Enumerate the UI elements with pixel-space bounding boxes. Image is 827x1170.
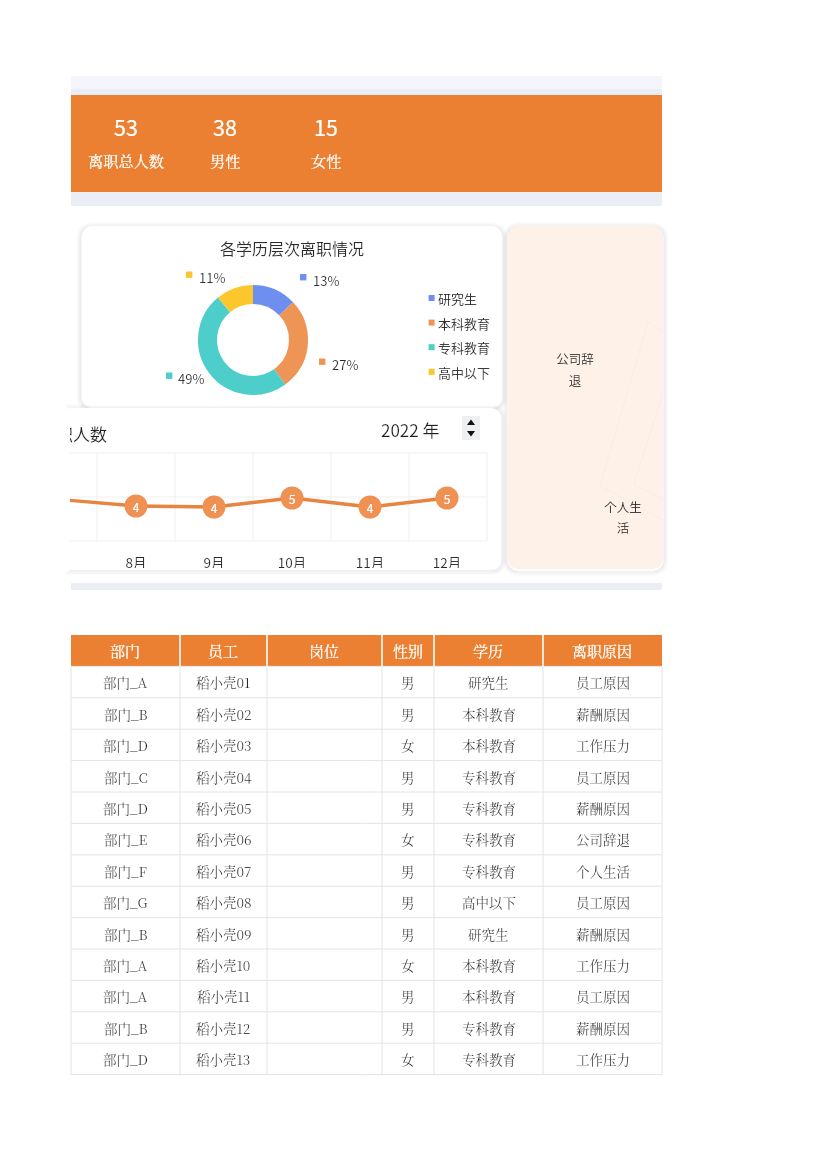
staticText: 本科教育 <box>462 955 516 974</box>
button[interactable]: 53 <box>71 95 662 192</box>
staticText: 女 <box>401 1049 415 1068</box>
staticText: 部门_A <box>103 986 148 1005</box>
staticText: 4 <box>358 499 382 516</box>
staticText: 个人生活 <box>576 861 630 880</box>
button[interactable]: Increase or decrease year <box>462 416 480 440</box>
staticText: 稻小壳05 <box>196 798 252 817</box>
staticText: 稻小壳04 <box>196 767 252 786</box>
staticText: 部门_D <box>103 1049 148 1068</box>
button[interactable]: 部门_A <box>71 666 662 697</box>
button[interactable]: 15 <box>266 111 386 172</box>
button[interactable]: 部门_A <box>71 949 662 980</box>
staticText: 男性 <box>210 150 241 172</box>
staticText: 部门_B <box>104 1018 148 1037</box>
staticText: 部门_A <box>103 672 148 691</box>
staticText: 员工原因 <box>576 986 630 1005</box>
staticText: 本科教育 <box>462 704 516 723</box>
staticText: 男 <box>401 798 415 817</box>
staticText: 男 <box>401 924 415 943</box>
button[interactable]: 部门_D <box>71 729 662 760</box>
staticText: 11月 <box>348 552 392 568</box>
staticText: 男 <box>401 672 415 691</box>
staticText: 部门_A <box>103 955 148 974</box>
button[interactable]: 部门_C <box>71 761 662 792</box>
staticText: 专科教育 <box>462 798 516 817</box>
staticText: 部门_G <box>103 892 148 911</box>
button[interactable]: 部门_D <box>71 1043 662 1074</box>
staticText: 工作压力 <box>576 955 630 974</box>
staticText: 个人生活 <box>604 497 642 537</box>
staticText: 女性 <box>311 150 342 172</box>
staticText: 9月 <box>192 552 236 568</box>
staticText: 工作压力 <box>576 735 630 754</box>
button[interactable]: 4 <box>70 408 501 568</box>
staticText: 员工原因 <box>576 767 630 786</box>
staticText: 13% <box>313 271 340 290</box>
staticText: 2022 年 <box>381 417 440 442</box>
button[interactable]: 部门_E <box>71 823 662 854</box>
staticText: 公司辞退 <box>556 349 594 389</box>
staticText: 男 <box>401 892 415 911</box>
staticText: 研究生 <box>438 289 478 308</box>
staticText: 部门 <box>110 640 141 662</box>
staticText: 专科教育 <box>462 767 516 786</box>
staticText: 专科教育 <box>462 1018 516 1037</box>
staticText: 专科教育 <box>462 1049 516 1068</box>
staticText: 高中以下 <box>438 363 491 382</box>
button[interactable]: 部门_B <box>71 918 662 949</box>
staticText: 员工原因 <box>576 892 630 911</box>
staticText: 男 <box>401 767 415 786</box>
button[interactable]: 部门_D <box>71 792 662 823</box>
staticText: 部门_E <box>104 829 148 848</box>
staticText: 研究生 <box>468 924 509 943</box>
staticText: 男 <box>401 704 415 723</box>
button[interactable]: 53 <box>66 111 186 172</box>
staticText: 部门_D <box>103 798 148 817</box>
staticText: 38 <box>213 111 237 142</box>
button[interactable]: 部门_B <box>71 698 662 729</box>
staticText: 8月 <box>114 552 158 568</box>
staticText: 薪酬原因 <box>576 798 630 817</box>
staticText: 公司辞退 <box>576 829 630 848</box>
staticText: 4 <box>202 499 226 516</box>
staticText: 薪酬原因 <box>576 1018 630 1037</box>
staticText: 53 <box>114 111 138 142</box>
staticText: 离职总人数 <box>88 150 164 172</box>
staticText: 稻小壳08 <box>196 892 252 911</box>
staticText: 15 <box>314 111 338 142</box>
button[interactable]: 各学历层次离职情况 <box>82 226 502 406</box>
staticText: 稻小壳02 <box>196 704 252 723</box>
staticText: 稻小壳03 <box>196 735 252 754</box>
button[interactable]: 部门 <box>71 635 662 666</box>
staticText: 性别 <box>393 640 424 662</box>
button[interactable]: 部门_B <box>71 1012 662 1043</box>
staticText: 各学历层次离职情况 <box>82 236 502 259</box>
button[interactable]: 部门_F <box>71 855 662 886</box>
button[interactable]: 公司辞退 <box>508 226 663 569</box>
button[interactable]: 部门_A <box>71 980 662 1011</box>
staticText: 4 <box>124 498 148 515</box>
staticText: 27% <box>332 355 359 374</box>
staticText: 女 <box>401 955 415 974</box>
button[interactable]: 38 <box>165 111 285 172</box>
staticText: 12月 <box>425 552 469 568</box>
staticText: 工作压力 <box>576 1049 630 1068</box>
staticText: 员工 <box>208 640 239 662</box>
button[interactable]: 部门_G <box>71 886 662 917</box>
staticText: 男 <box>401 1018 415 1037</box>
staticText: 离职原因 <box>572 640 633 662</box>
staticText: 部门_B <box>104 924 148 943</box>
staticText: 部门_D <box>103 735 148 754</box>
staticText: 稻小壳10 <box>196 955 251 974</box>
staticText: 5 <box>280 490 304 507</box>
staticText: 女 <box>401 735 415 754</box>
staticText: 稻小壳06 <box>196 829 252 848</box>
staticText: 专科教育 <box>462 861 516 880</box>
staticText: 份离职人数 <box>70 421 107 446</box>
staticText: 稻小壳13 <box>196 1049 251 1068</box>
staticText: 11% <box>199 268 226 287</box>
staticText: 5 <box>435 490 459 507</box>
staticText: 稻小壳11 <box>197 986 251 1005</box>
staticText: 专科教育 <box>438 338 491 357</box>
staticText: 稻小壳01 <box>196 672 251 691</box>
